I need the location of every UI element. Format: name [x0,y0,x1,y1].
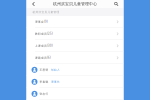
button[interactable]: 教职成员(25) [26,28,123,40]
staticText: 理事会(9) [35,20,48,23]
staticText: 杭州滨宝贝儿童管理 [32,10,59,14]
button[interactable]: 上课成员(30) [26,40,123,52]
button[interactable]: 王思明 [26,64,123,76]
staticText: 创始人 [51,68,60,71]
button[interactable]: Search [111,0,123,8]
staticText: 教职成员(25) [35,32,53,35]
staticText: 王思明 [39,68,48,71]
staticText: 李春晓 [39,80,48,83]
button[interactable]: Back [26,0,39,8]
staticText: 杭州滨宝贝儿童管理中心 [53,1,97,6]
staticText: 上课成员(30) [35,44,53,47]
staticText: 课题成员(6) [35,56,51,59]
staticText: 理事长 [51,80,60,83]
button[interactable]: 课题成员(6) [26,52,123,64]
button[interactable]: 张志行 [26,88,123,100]
button[interactable]: 李春晓 [26,76,123,88]
staticText: 张志行 [39,92,48,95]
button[interactable]: 理事会(9) [26,16,123,28]
